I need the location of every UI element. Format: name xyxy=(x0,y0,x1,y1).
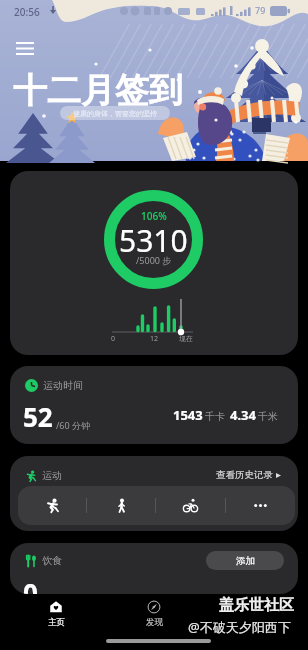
staticText: @不破天夕阳西下 xyxy=(188,618,291,636)
staticText: 千卡 xyxy=(205,410,225,423)
button[interactable]: 主页 xyxy=(33,600,79,628)
staticText: 0 xyxy=(111,334,116,344)
staticText: 52 xyxy=(23,399,53,434)
staticText: 运动 xyxy=(42,469,62,482)
button[interactable]: Walking xyxy=(87,486,155,525)
staticText: 发现 xyxy=(146,617,163,628)
staticText: 20:56 xyxy=(14,5,40,19)
staticText: 盖乐世社区 xyxy=(219,596,294,615)
staticText: 106% xyxy=(141,209,167,223)
staticText: 查看历史记录 xyxy=(216,469,273,481)
staticText: 添加 xyxy=(236,555,255,567)
staticText: 4.34 xyxy=(230,406,256,424)
button[interactable]: Menu xyxy=(16,42,34,60)
staticText: 饮食 xyxy=(42,554,62,567)
staticText: 1543 xyxy=(173,406,203,424)
staticText: 千米 xyxy=(258,410,278,423)
button[interactable]: 106% xyxy=(10,171,298,355)
staticText: /60 分钟 xyxy=(56,419,90,431)
button[interactable]: Running xyxy=(18,486,86,525)
button[interactable]: Cycling xyxy=(156,486,225,525)
staticText: 十二月签到 xyxy=(13,69,183,112)
staticText: 0 xyxy=(23,575,38,594)
staticText: 主页 xyxy=(48,617,65,628)
staticText: 79 xyxy=(255,4,266,16)
button[interactable]: 发现 xyxy=(131,600,177,628)
button[interactable]: More xyxy=(226,486,295,525)
staticText: 健康的身体，需要您的坚持 xyxy=(73,109,157,118)
staticText: 5310 xyxy=(119,220,188,261)
button[interactable]: 查看历史记录 xyxy=(213,465,284,485)
staticText: 现在 xyxy=(179,334,193,343)
staticText: /5000 步 xyxy=(136,254,172,266)
button[interactable]: 添加 xyxy=(206,551,284,570)
staticText: 12 xyxy=(150,334,159,344)
button[interactable]: 运动时间 xyxy=(10,366,298,444)
staticText: 运动时间 xyxy=(43,379,83,392)
